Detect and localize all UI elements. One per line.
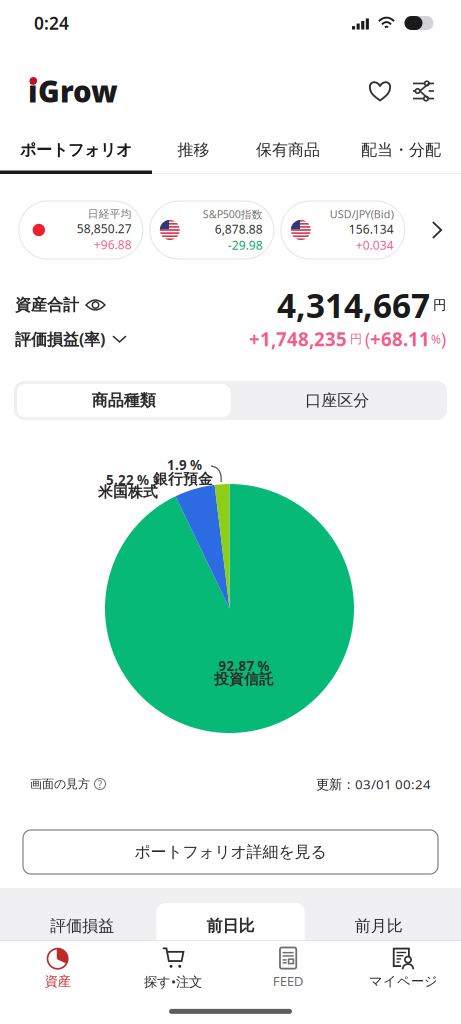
- button[interactable]: 配当・分配: [341, 136, 461, 174]
- button[interactable]: ポートフォリオ: [0, 136, 152, 174]
- staticText: -29.98: [228, 237, 263, 253]
- button[interactable]: 口座区分: [230, 384, 444, 417]
- staticText: 評価損益: [50, 916, 114, 936]
- staticText: 資産: [45, 973, 71, 990]
- button[interactable]: 前月比: [305, 903, 453, 949]
- staticText: 保有商品: [256, 140, 320, 160]
- staticText: 更新：03/01 00:24: [316, 775, 431, 793]
- staticText: S&P500指数: [203, 207, 263, 221]
- staticText: iGrow: [28, 71, 118, 110]
- button[interactable]: もっと見る: [427, 216, 447, 244]
- button[interactable]: USD/JPY(Bid): [281, 201, 405, 259]
- staticText: +68.11: [370, 327, 430, 351]
- staticText: 156.134: [349, 221, 394, 237]
- staticText: 投資信託: [214, 670, 274, 688]
- staticText: ポートフォリオ: [20, 140, 132, 160]
- button[interactable]: 画面の見方: [30, 777, 106, 791]
- staticText: ?: [97, 777, 102, 791]
- staticText: 5.22 %: [106, 471, 149, 489]
- staticText: 6,878.88: [215, 221, 263, 237]
- staticText: 評価損益(率): [15, 328, 105, 350]
- button[interactable]: 前日比: [156, 903, 305, 949]
- staticText: 0:24: [34, 11, 69, 34]
- staticText: USD/JPY(Bid): [330, 207, 394, 221]
- staticText: %: [431, 331, 441, 347]
- staticText: 探す•注文: [144, 972, 202, 990]
- staticText: 4,314,667: [277, 283, 430, 327]
- staticText: 58,850.27: [77, 221, 132, 236]
- button[interactable]: 日経平均: [19, 201, 143, 259]
- button[interactable]: 評価損益: [8, 903, 156, 949]
- staticText: +96.88: [94, 237, 132, 252]
- staticText: 円: [350, 332, 362, 346]
- staticText: 前日比: [206, 916, 254, 936]
- staticText: ): [441, 327, 446, 350]
- button[interactable]: 商品種類: [17, 384, 230, 417]
- staticText: 1.9 %: [167, 456, 202, 474]
- button[interactable]: 保有商品: [235, 136, 341, 174]
- button[interactable]: FEED: [230, 942, 346, 994]
- staticText: 商品種類: [92, 391, 156, 410]
- staticText: 資産合計: [15, 295, 79, 315]
- button[interactable]: 推移: [152, 136, 235, 174]
- button[interactable]: 金額の表示切替: [79, 300, 105, 310]
- button[interactable]: 探す•注文: [115, 942, 230, 994]
- button[interactable]: お気に入り: [361, 72, 399, 110]
- staticText: 口座区分: [305, 391, 369, 410]
- staticText: 92.87 %: [218, 657, 269, 675]
- staticText: マイページ: [369, 973, 438, 990]
- staticText: 米国株式: [98, 483, 158, 501]
- staticText: 配当・分配: [361, 140, 441, 160]
- staticText: +1,748,235: [249, 327, 347, 351]
- staticText: 前月比: [355, 916, 403, 936]
- button[interactable]: S&P500指数: [150, 201, 274, 259]
- staticText: 推移: [177, 140, 209, 160]
- staticText: FEED: [273, 972, 304, 990]
- staticText: +0.034: [356, 237, 394, 253]
- staticText: 日経平均: [88, 207, 132, 221]
- staticText: 画面の見方: [30, 777, 90, 791]
- button[interactable]: iGrow ホーム: [28, 71, 118, 110]
- staticText: 銀行預金: [153, 470, 213, 488]
- button[interactable]: マイページ: [346, 942, 461, 994]
- staticText: 円: [433, 297, 446, 313]
- staticText: ポートフォリオ詳細を見る: [134, 842, 326, 862]
- staticText: (: [365, 327, 370, 350]
- button[interactable]: 資産: [0, 942, 115, 994]
- button[interactable]: フィルタ: [405, 72, 442, 109]
- button[interactable]: 評価損益(率): [15, 328, 446, 350]
- button[interactable]: ポートフォリオ詳細を見る: [23, 830, 438, 874]
